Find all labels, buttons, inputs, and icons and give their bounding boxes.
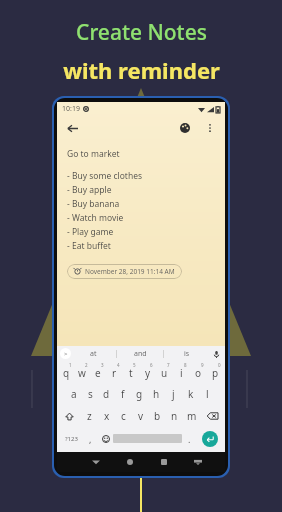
button[interactable]: c	[115, 405, 132, 427]
staticText: i	[180, 366, 183, 380]
button[interactable]: n	[166, 405, 183, 427]
button[interactable]: 5	[122, 361, 139, 383]
staticText: - Eat buffet	[67, 240, 111, 252]
button[interactable]: ?123	[59, 427, 83, 450]
staticText: d	[103, 387, 110, 401]
staticText: is	[184, 349, 190, 359]
button[interactable]: j	[165, 383, 182, 405]
staticText: and	[134, 349, 147, 359]
button[interactable]: s	[82, 383, 98, 405]
button[interactable]: 7	[156, 361, 173, 383]
staticText: z	[87, 409, 92, 423]
button[interactable]: 0	[207, 361, 224, 383]
staticText: 7	[167, 362, 170, 368]
staticText: November 28, 2019 11:14 AM	[85, 267, 175, 276]
staticText: p	[212, 366, 219, 380]
staticText: w	[78, 366, 86, 380]
button[interactable]: More options	[201, 119, 219, 137]
staticText: q	[63, 366, 70, 380]
staticText: ,	[89, 433, 92, 445]
staticText: - Watch movie	[67, 212, 124, 224]
button[interactable]: f	[114, 383, 131, 405]
button[interactable]: 1	[58, 361, 74, 383]
staticText: .	[188, 433, 191, 445]
button[interactable]: 8	[173, 361, 190, 383]
staticText: 8	[184, 362, 187, 368]
staticText: e	[95, 366, 101, 380]
button[interactable]: d	[98, 383, 114, 405]
button[interactable]: Hide keyboard	[181, 452, 215, 472]
staticText: ?123	[65, 435, 78, 443]
staticText: at	[90, 349, 97, 359]
staticText: t	[129, 366, 133, 380]
staticText: b	[154, 409, 161, 423]
button[interactable]: 2	[74, 361, 90, 383]
button[interactable]: and	[117, 349, 163, 359]
staticText: 2	[85, 362, 88, 368]
staticText: a	[71, 387, 77, 401]
staticText: 10:19	[62, 104, 80, 114]
staticText: Create Notes	[76, 18, 207, 47]
button[interactable]: b	[149, 405, 166, 427]
staticText: with reminder	[63, 55, 220, 85]
staticText: k	[188, 387, 194, 401]
button[interactable]: Voice input	[210, 348, 222, 360]
button[interactable]: Back	[79, 452, 113, 472]
button[interactable]: Enter	[202, 431, 218, 447]
button[interactable]: Back	[63, 119, 81, 137]
staticText: y	[145, 366, 151, 380]
staticText: 0	[218, 362, 221, 368]
button[interactable]: Home	[113, 452, 147, 472]
button[interactable]: x	[98, 405, 115, 427]
staticText: u	[161, 366, 168, 380]
button[interactable]: Backspace	[200, 405, 224, 427]
button[interactable]: g	[131, 383, 148, 405]
button[interactable]: a	[66, 383, 82, 405]
button[interactable]: is	[164, 349, 210, 359]
staticText: m	[187, 409, 197, 423]
staticText: x	[104, 409, 110, 423]
staticText: o	[195, 366, 202, 380]
button[interactable]: Expand	[60, 348, 71, 359]
staticText: l	[206, 387, 209, 401]
staticText: - Buy banana	[67, 198, 120, 210]
button[interactable]: h	[148, 383, 165, 405]
button[interactable]: Recent apps	[147, 452, 181, 472]
staticText: v	[138, 409, 144, 423]
button[interactable]: l	[199, 383, 216, 405]
button[interactable]: 6	[139, 361, 156, 383]
button[interactable]: k	[182, 383, 199, 405]
button[interactable]: z	[81, 405, 98, 427]
button[interactable]: at	[71, 349, 116, 359]
staticText: >	[64, 350, 68, 358]
staticText: h	[153, 387, 160, 401]
button[interactable]: 4	[106, 361, 122, 383]
staticText: 3	[101, 362, 104, 368]
staticText: - Buy some clothes	[67, 170, 143, 182]
button[interactable]: Shift	[58, 405, 81, 427]
staticText: 6	[150, 362, 153, 368]
staticText: 5	[133, 362, 136, 368]
staticText: - Play game	[67, 226, 114, 238]
button[interactable]: v	[132, 405, 149, 427]
staticText: n	[171, 409, 178, 423]
staticText: Go to market	[67, 148, 120, 160]
button[interactable]: Change color	[176, 119, 194, 137]
button[interactable]: m	[183, 405, 200, 427]
button[interactable]: ,	[83, 427, 98, 450]
staticText: r	[112, 366, 117, 380]
staticText: g	[136, 387, 143, 401]
staticText: c	[121, 409, 126, 423]
staticText: 9	[201, 362, 204, 368]
staticText: 1	[69, 362, 72, 368]
staticText: - Buy apple	[67, 184, 112, 196]
staticText: f	[121, 387, 125, 401]
button[interactable]: 9	[190, 361, 207, 383]
button[interactable]: 3	[90, 361, 106, 383]
staticText: 4	[117, 362, 120, 368]
staticText: j	[172, 387, 175, 401]
button[interactable]: November 28, 2019 11:14 AM	[67, 264, 182, 279]
button[interactable]: .	[182, 427, 197, 450]
button[interactable]: Emoji	[98, 427, 113, 450]
